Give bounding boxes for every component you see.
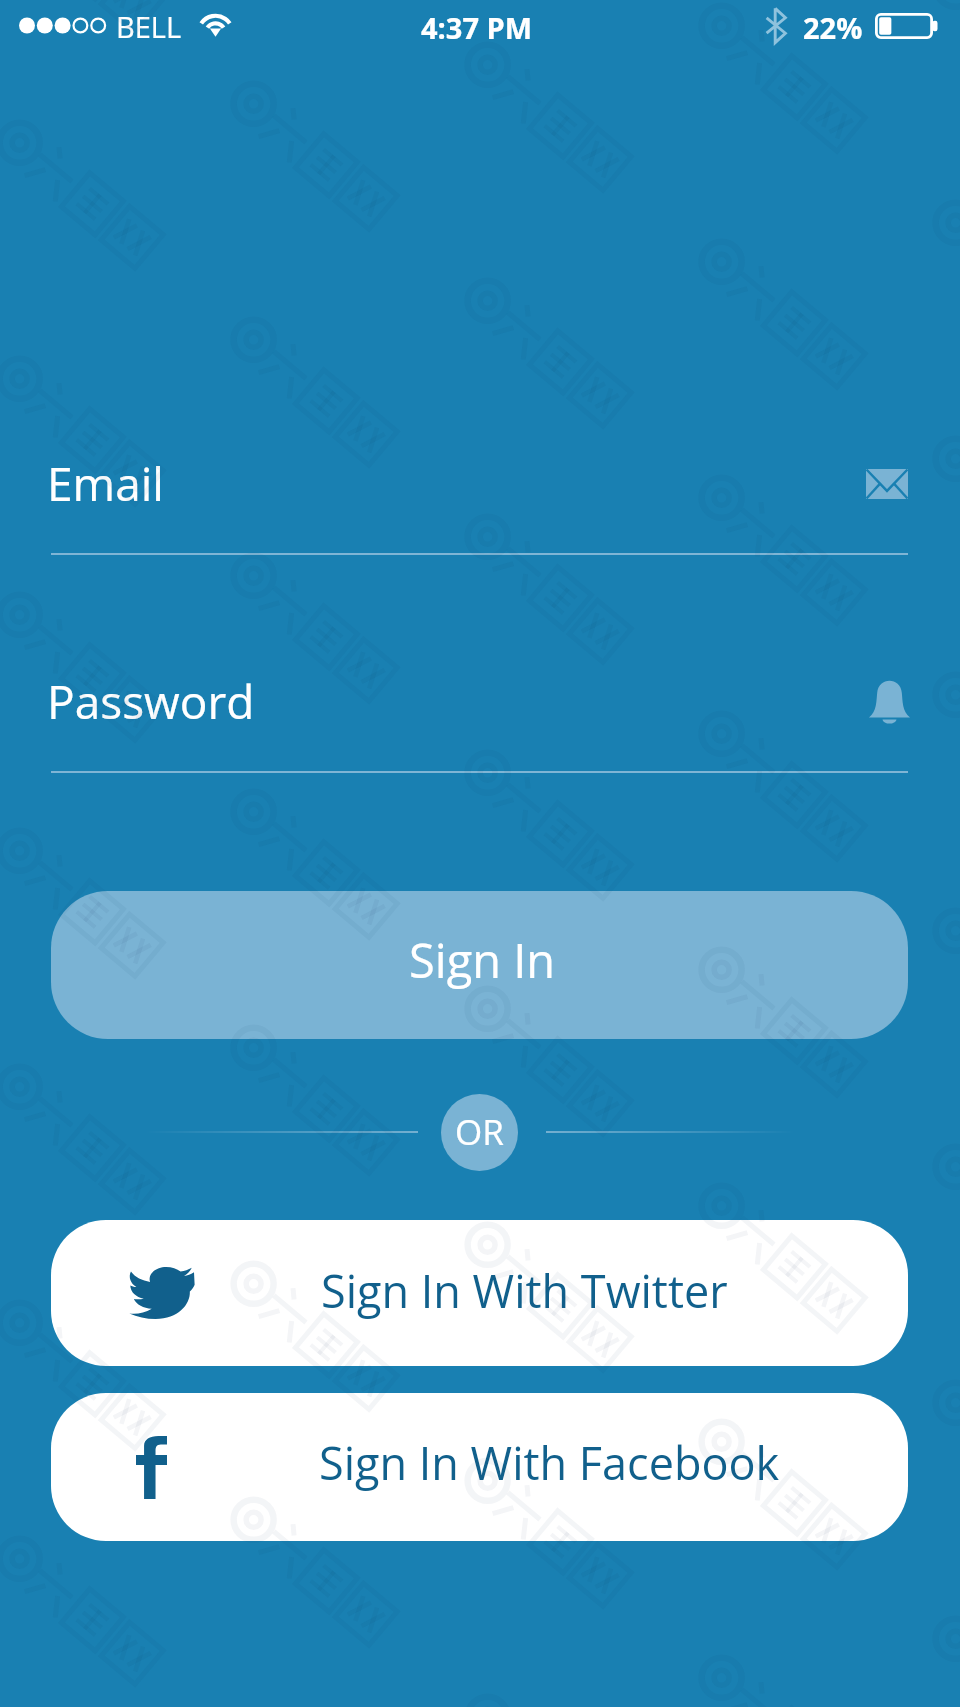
- button[interactable]: Sign In With Facebook: [51, 1393, 908, 1541]
- staticText: Sign In With Twitter: [321, 1260, 728, 1321]
- button[interactable]: Sign In: [51, 891, 908, 1039]
- staticText: BELL: [116, 7, 182, 46]
- staticText: Email: [47, 452, 164, 515]
- other: Notifications: [869, 679, 910, 724]
- other: Email: [866, 469, 908, 499]
- button[interactable]: Password: [47, 663, 908, 773]
- button[interactable]: Notifications: [869, 679, 910, 724]
- staticText: Sign In: [409, 928, 556, 992]
- button[interactable]: Sign In With Twitter: [51, 1220, 908, 1366]
- staticText: Password: [47, 670, 255, 733]
- button[interactable]: Email: [866, 469, 908, 499]
- staticText: 22%: [803, 8, 863, 47]
- staticText: Sign In With Facebook: [319, 1432, 780, 1493]
- button[interactable]: Email: [47, 445, 908, 555]
- staticText: 4:37 PM: [421, 8, 533, 47]
- staticText: OR: [455, 1108, 504, 1156]
